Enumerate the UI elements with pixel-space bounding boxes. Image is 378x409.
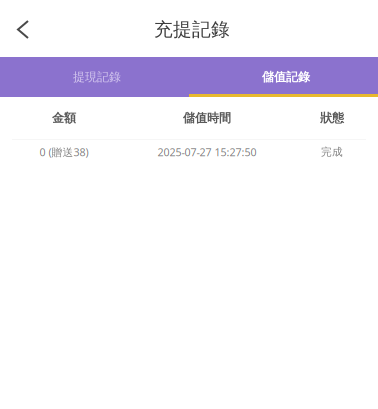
button[interactable]: 提現記錄 [0,57,189,97]
button[interactable]: Back [0,4,46,52]
button[interactable]: 儲值記錄 [189,57,378,97]
staticText: 充提記錄 [154,18,230,41]
staticText: 儲值記錄 [262,70,310,84]
staticText: 狀態 [320,111,344,125]
staticText: 金額 [52,111,76,125]
staticText: 0 (贈送38) [39,145,88,159]
staticText: 儲值時間 [183,111,231,125]
staticText: 完成 [321,145,343,158]
staticText: 提現記錄 [73,70,121,84]
staticText: 2025-07-27 15:27:50 [157,145,256,159]
